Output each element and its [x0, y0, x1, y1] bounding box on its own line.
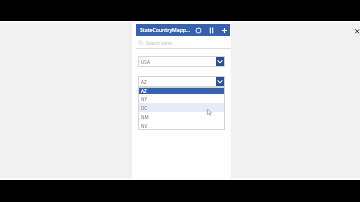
other: Open USA dropdown [216, 57, 224, 66]
button[interactable]: Close [351, 24, 360, 36]
button[interactable]: USA [138, 56, 225, 67]
button[interactable]: DC [138, 103, 225, 112]
staticText: DC [141, 105, 148, 111]
staticText: AZ [141, 79, 147, 85]
button[interactable]: NY [138, 94, 225, 103]
button[interactable]: Add [219, 25, 230, 36]
button[interactable]: AZ [138, 87, 225, 94]
staticText: Search items [146, 40, 173, 46]
staticText: NM [141, 114, 149, 120]
staticText: NY [141, 96, 148, 102]
staticText: USA [141, 59, 150, 65]
button[interactable]: Pause [206, 25, 217, 36]
button[interactable]: NM [138, 112, 225, 121]
button[interactable]: NV [138, 121, 225, 130]
button[interactable]: Search items [136, 37, 231, 48]
staticText: StateCountryMapp... [140, 27, 191, 34]
other: Open AZ dropdown [216, 77, 224, 86]
staticText: AZ [141, 88, 147, 94]
button[interactable]: StateCountryMapp... [136, 24, 230, 36]
button[interactable]: Refresh [193, 25, 204, 36]
staticText: NV [141, 123, 148, 129]
button[interactable]: AZ [138, 76, 225, 87]
